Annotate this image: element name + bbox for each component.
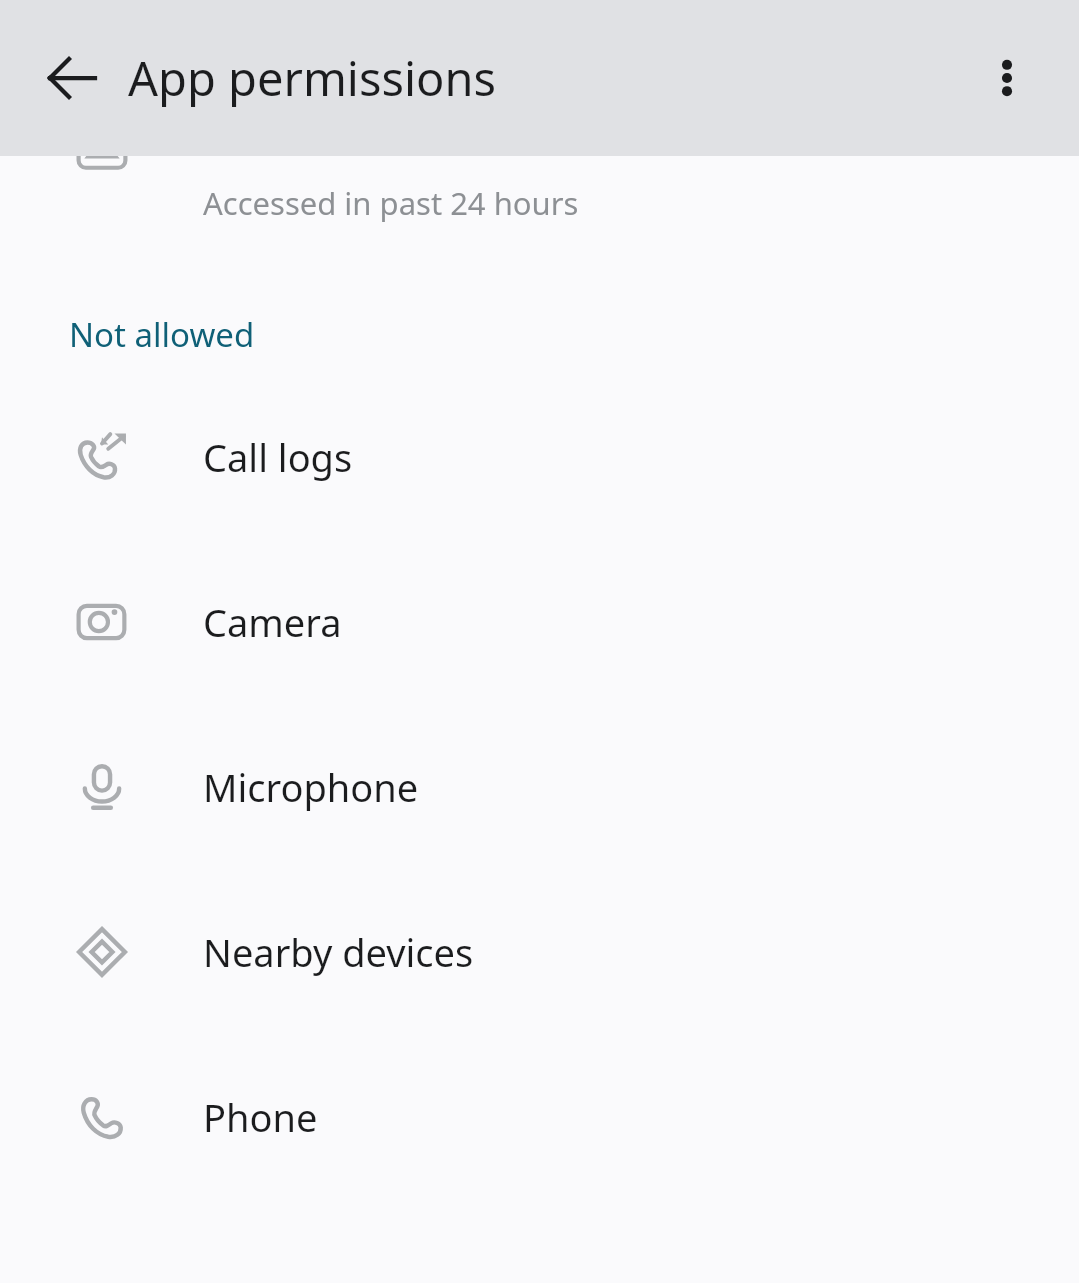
staticText: Nearby devices [203,926,474,978]
button[interactable]: Call logs [0,374,1079,539]
staticText: App permissions [128,46,497,110]
button[interactable]: Phone [0,1034,1079,1199]
staticText: Accessed in past 24 hours [203,182,579,224]
staticText: Not allowed [69,312,255,357]
button[interactable]: More options [971,42,1043,114]
button[interactable]: Camera [0,539,1079,704]
button[interactable]: Back [36,42,108,114]
staticText: Camera [203,596,342,648]
staticText: Phone [203,1091,318,1143]
button[interactable]: Microphone [0,704,1079,869]
staticText: Microphone [203,761,419,813]
button[interactable]: Nearby devices [0,869,1079,1034]
staticText: Call logs [203,431,353,483]
